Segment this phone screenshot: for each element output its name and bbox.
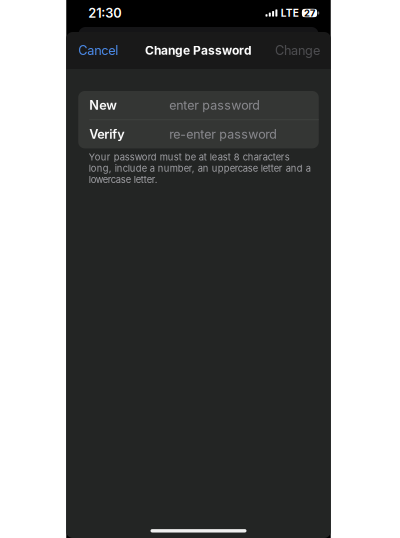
staticText: LTE	[281, 7, 299, 19]
staticText: Your password must be at least 8 charact…	[89, 151, 311, 185]
button[interactable]: New	[78, 91, 319, 119]
staticText: New	[89, 97, 117, 113]
staticText: enter password	[169, 98, 260, 113]
button[interactable]: Change	[266, 32, 331, 69]
button[interactable]: Cancel	[66, 32, 127, 69]
staticText: Verify	[89, 127, 124, 142]
staticText: Cancel	[78, 43, 118, 58]
staticText: Change	[275, 43, 320, 58]
staticText: re-enter password	[169, 127, 277, 142]
button[interactable]: Verify	[78, 120, 319, 148]
staticText: 27	[304, 7, 315, 19]
staticText: Change Password	[145, 43, 252, 58]
staticText: 21:30	[88, 5, 121, 21]
